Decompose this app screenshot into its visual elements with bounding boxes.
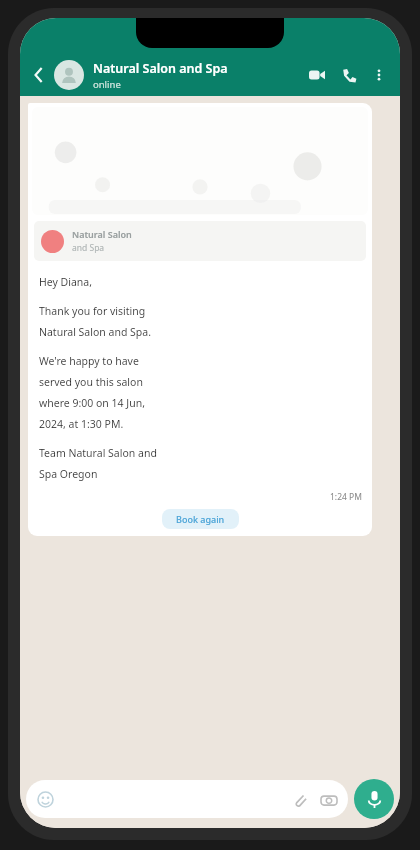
staticText: Team Natural Salon and [39,446,157,460]
other: Attach [290,790,309,809]
staticText: 2024, at 1:30 PM. [39,417,124,431]
staticText: where 9:00 on 14 Jun, [39,396,145,410]
button[interactable]: Video call [304,62,330,88]
staticText: 1:24 PM [330,491,362,503]
staticText: Natural Salon [72,228,132,240]
other: Camera [319,790,338,809]
staticText: and Spa [72,242,105,254]
staticText: online [93,78,121,91]
button[interactable]: Book again [28,509,372,529]
button[interactable]: Natural Salon [41,228,359,254]
button[interactable]: Natural Salon [28,103,372,536]
button[interactable]: Back [30,65,50,85]
staticText: Thank you for visiting [39,304,146,318]
button[interactable]: Voice call [336,62,362,88]
staticText: Hey Diana, [39,275,93,289]
staticText: We're happy to have [39,354,139,368]
staticText: Book again [176,513,225,525]
staticText: Natural Salon and Spa. [39,325,152,339]
button[interactable]: More options [368,64,390,86]
staticText: Spa Oregon [39,467,98,481]
staticText: Natural Salon and Spa [93,60,228,77]
other: Emoji [36,790,55,809]
button[interactable] [54,60,84,90]
staticText: served you this salon [39,375,143,389]
button[interactable]: Natural Salon and Spa [93,60,304,91]
button[interactable]: Voice message [354,779,394,819]
button[interactable]: Emoji [36,780,338,818]
